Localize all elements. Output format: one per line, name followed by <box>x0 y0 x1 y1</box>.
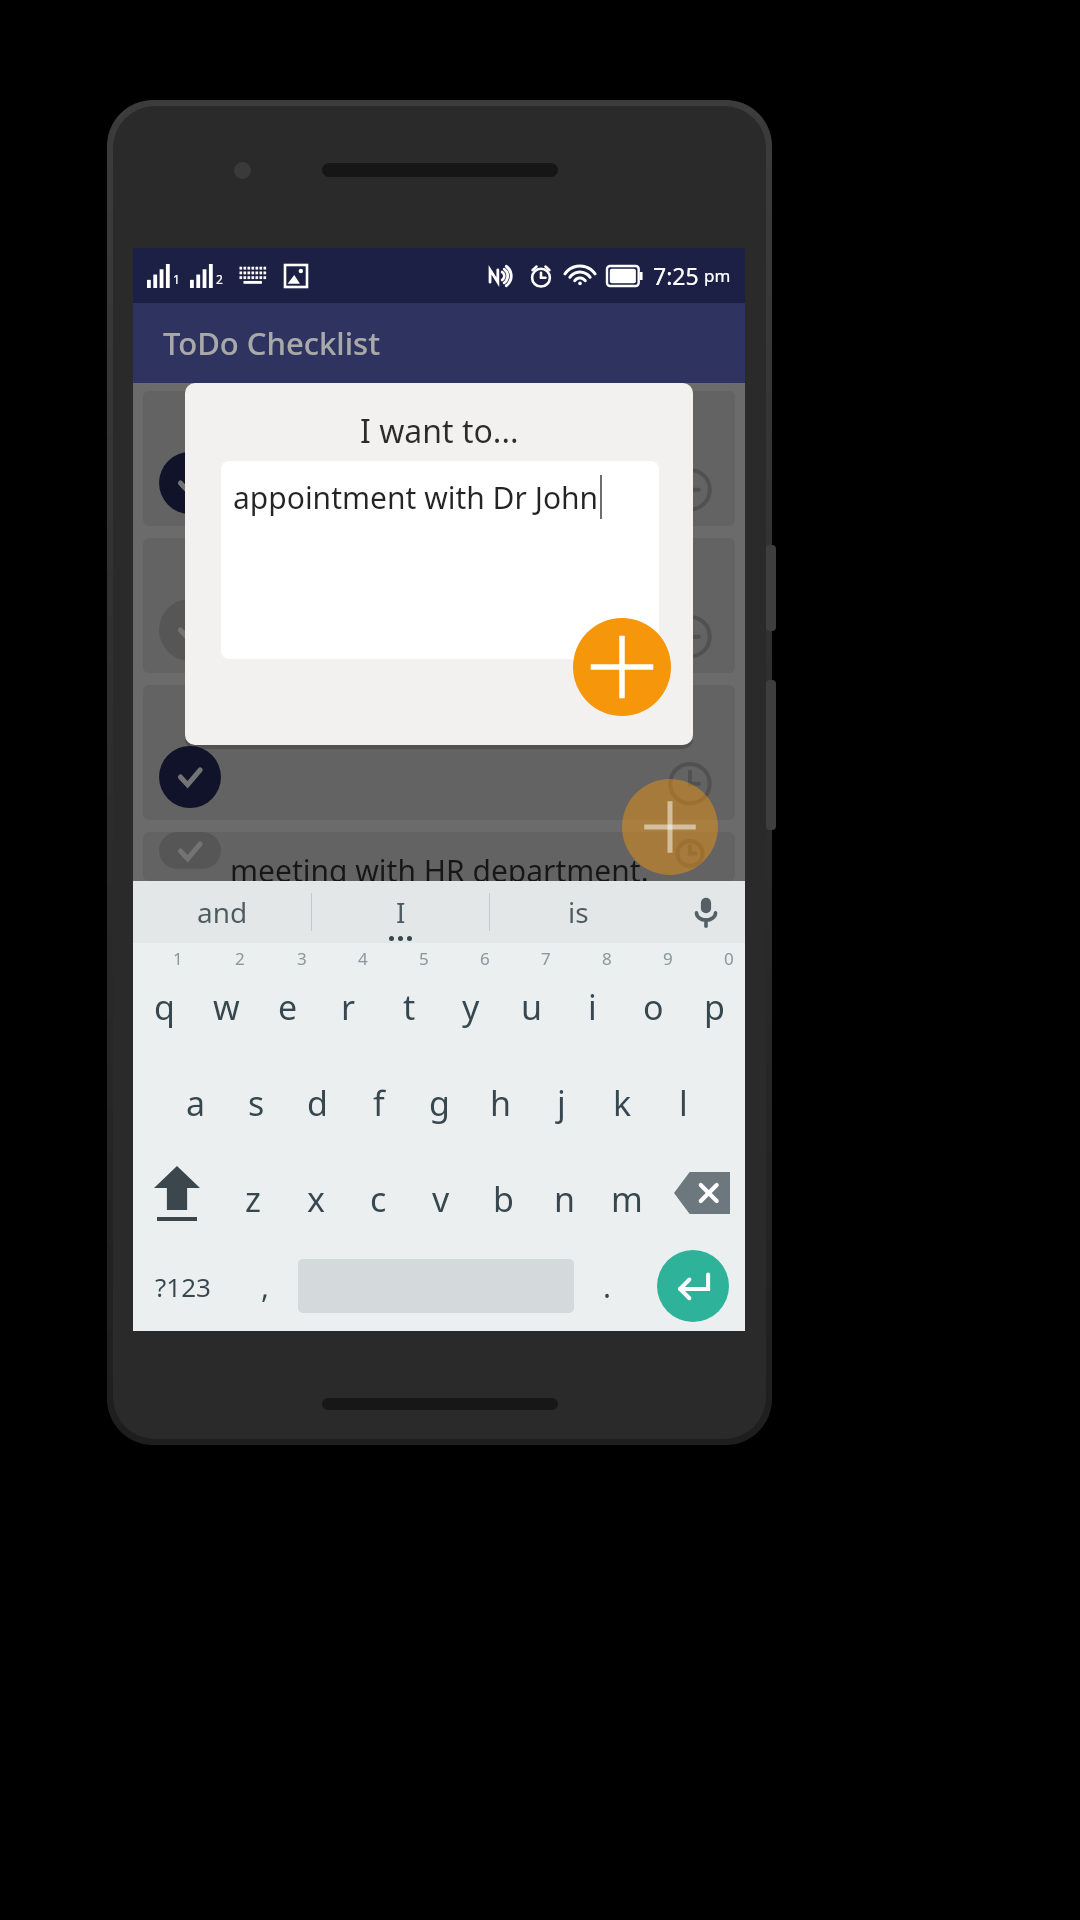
staticText: e <box>278 984 298 1030</box>
staticText: 2 <box>235 947 245 970</box>
staticText: b <box>493 1176 514 1222</box>
staticText: ?123 <box>155 1269 211 1304</box>
staticText: call Jimmy <box>368 409 510 450</box>
staticText: i <box>588 984 597 1030</box>
button[interactable]: x <box>284 1145 347 1241</box>
staticText: 1 <box>173 947 183 970</box>
button[interactable] <box>143 538 735 673</box>
button[interactable]: Add <box>573 618 671 716</box>
staticText: f <box>373 1080 385 1126</box>
staticText: x <box>307 1176 325 1222</box>
button[interactable]: , <box>232 1241 298 1331</box>
staticText: ToDo Checklist <box>163 322 380 364</box>
staticText: q <box>154 984 175 1030</box>
button[interactable]: is <box>490 881 667 943</box>
staticText: c <box>370 1176 387 1222</box>
staticText: appointment with Dr John <box>233 477 599 518</box>
button[interactable]: 8 <box>562 953 623 1049</box>
staticText: 5 <box>419 947 429 970</box>
button[interactable]: l <box>653 1049 714 1145</box>
staticText: and <box>197 893 248 931</box>
button[interactable]: n <box>534 1145 596 1241</box>
staticText: is <box>568 893 589 931</box>
button[interactable]: 4 <box>318 953 379 1049</box>
button[interactable]: v <box>410 1145 472 1241</box>
button[interactable]: g <box>409 1049 470 1145</box>
button[interactable]: k <box>592 1049 653 1145</box>
button[interactable]: I <box>312 881 489 943</box>
button[interactable]: and <box>133 881 311 943</box>
button[interactable]: m <box>596 1145 658 1241</box>
staticText: h <box>490 1080 512 1126</box>
staticText: 3 <box>297 947 307 970</box>
button[interactable]: z <box>221 1145 284 1241</box>
button[interactable]: appointment with Dr John <box>221 461 659 659</box>
button[interactable]: f <box>348 1049 409 1145</box>
button[interactable]: j <box>531 1049 592 1145</box>
button[interactable]: . <box>574 1241 640 1331</box>
staticText: t <box>403 984 416 1030</box>
staticText: l <box>679 1080 688 1126</box>
staticText: n <box>554 1176 576 1222</box>
button[interactable]: 1 <box>133 953 195 1049</box>
staticText: . <box>603 1266 612 1307</box>
staticText: meeting with HR department. <box>230 850 649 881</box>
button[interactable]: c <box>347 1145 410 1241</box>
staticText: z <box>245 1176 261 1222</box>
staticText: o <box>643 984 664 1030</box>
staticText: 9 <box>663 947 673 970</box>
staticText: w <box>213 984 240 1030</box>
staticText: 7 <box>541 947 551 970</box>
staticText: 8 <box>602 947 612 970</box>
staticText: 6 <box>480 947 490 970</box>
button[interactable]: 9 <box>623 953 684 1049</box>
staticText: pm <box>704 264 731 287</box>
staticText: u <box>521 984 543 1030</box>
staticText: s <box>248 1080 265 1126</box>
staticText: 1 <box>173 271 180 287</box>
button[interactable] <box>143 685 735 820</box>
button[interactable]: a <box>165 1049 226 1145</box>
staticText: y <box>462 984 480 1030</box>
staticText: 0 <box>724 947 734 970</box>
staticText: g <box>429 1080 450 1126</box>
button[interactable]: d <box>287 1049 348 1145</box>
button[interactable]: meeting with HR department. <box>143 832 735 881</box>
staticText: I <box>396 893 406 931</box>
staticText: 4 <box>358 947 368 970</box>
button[interactable]: Backspace <box>658 1145 745 1241</box>
staticText: r <box>341 984 356 1030</box>
button[interactable]: Shift <box>133 1145 221 1241</box>
button[interactable]: b <box>472 1145 534 1241</box>
staticText: j <box>557 1080 566 1126</box>
staticText: k <box>613 1080 632 1126</box>
staticText: a <box>186 1080 206 1126</box>
button[interactable]: 5 <box>379 953 440 1049</box>
button[interactable]: Voice input <box>667 881 745 943</box>
button[interactable]: h <box>470 1049 531 1145</box>
staticText: 7:25 <box>653 260 699 291</box>
button[interactable]: 0 <box>684 953 745 1049</box>
staticText: d <box>307 1080 328 1126</box>
button[interactable]: 7 <box>501 953 562 1049</box>
button[interactable]: Add task <box>622 779 718 875</box>
button[interactable]: 2 <box>195 953 257 1049</box>
button[interactable]: 6 <box>440 953 501 1049</box>
button[interactable]: Enter <box>657 1250 729 1322</box>
staticText: p <box>704 984 725 1030</box>
staticText: 2 <box>216 271 223 287</box>
button[interactable]: 3 <box>257 953 318 1049</box>
staticText: , <box>261 1266 270 1307</box>
button[interactable]: call Jimmy <box>143 391 735 526</box>
button[interactable]: s <box>226 1049 287 1145</box>
staticText: I want to... <box>360 409 519 453</box>
staticText: m <box>611 1176 643 1222</box>
staticText: v <box>432 1176 450 1222</box>
button[interactable]: ?123 <box>133 1241 232 1331</box>
